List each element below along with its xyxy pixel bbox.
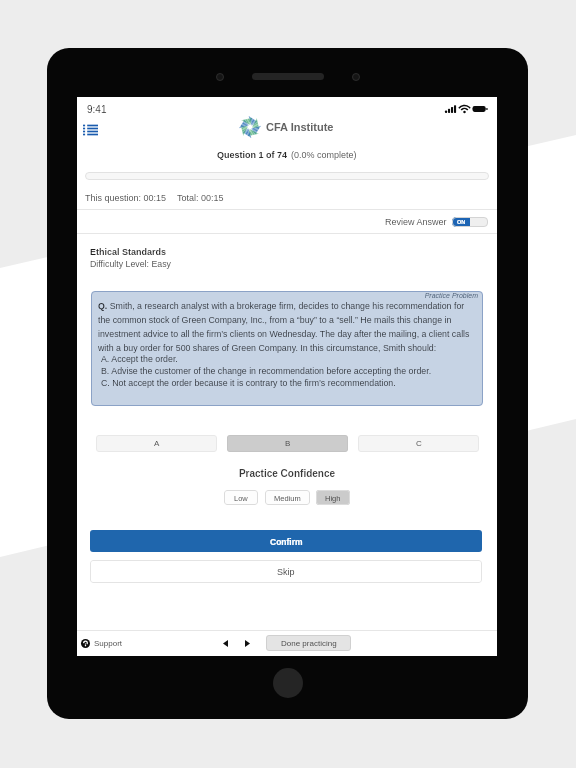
button[interactable]: Skip bbox=[90, 560, 482, 583]
staticText: 9:41 bbox=[87, 104, 107, 115]
staticText: C. Not accept the order because it is co… bbox=[101, 378, 396, 388]
staticText: Done practicing bbox=[281, 639, 337, 648]
staticText: Question 1 of 74 bbox=[217, 150, 288, 160]
button[interactable]: C bbox=[358, 435, 479, 452]
staticText: C bbox=[416, 439, 422, 448]
staticText: Review Answer bbox=[385, 217, 447, 227]
staticText: (0.0% complete) bbox=[291, 150, 357, 160]
button[interactable]: Medium bbox=[265, 490, 310, 505]
button[interactable]: Confirm bbox=[90, 530, 482, 552]
staticText: Q. Smith, a research analyst with a brok… bbox=[98, 301, 478, 353]
button[interactable]: Next question bbox=[239, 635, 255, 651]
button[interactable]: Previous question bbox=[217, 635, 233, 651]
button[interactable]: Done practicing bbox=[266, 635, 351, 651]
button[interactable]: High bbox=[316, 490, 350, 505]
staticText: Difficulty Level: Easy bbox=[90, 259, 171, 269]
staticText: Low bbox=[234, 494, 248, 502]
button[interactable]: ON bbox=[452, 217, 488, 227]
button[interactable]: A bbox=[96, 435, 217, 452]
button[interactable]: Menu bbox=[78, 118, 102, 142]
staticText: B. Advise the customer of the change in … bbox=[101, 366, 432, 376]
staticText: Skip bbox=[277, 567, 295, 577]
button[interactable]: Support bbox=[81, 636, 123, 651]
staticText: B bbox=[285, 439, 291, 448]
staticText: ON bbox=[457, 219, 466, 225]
staticText: Practice Problem bbox=[98, 292, 478, 300]
staticText: Confirm bbox=[270, 537, 303, 546]
staticText: Ethical Standards bbox=[90, 247, 167, 257]
staticText: Support bbox=[94, 639, 123, 648]
staticText: Practice Confidence bbox=[77, 468, 497, 479]
button[interactable]: B bbox=[227, 435, 348, 452]
staticText: CFA Institute bbox=[266, 121, 334, 133]
staticText: High bbox=[325, 494, 341, 502]
button[interactable]: Low bbox=[224, 490, 258, 505]
staticText: Medium bbox=[274, 494, 301, 502]
staticText: This question: 00:15 bbox=[85, 193, 167, 203]
staticText: A. Accept the order. bbox=[101, 354, 178, 364]
staticText: A bbox=[154, 439, 160, 448]
staticText: Total: 00:15 bbox=[177, 193, 224, 203]
